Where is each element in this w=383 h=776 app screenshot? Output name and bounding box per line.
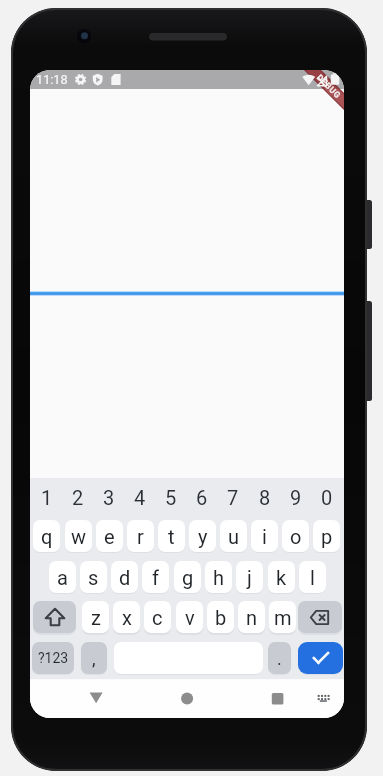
- button[interactable]: ,: [81, 642, 107, 674]
- staticText: 6: [196, 486, 208, 509]
- button[interactable]: 6: [188, 485, 216, 509]
- button[interactable]: [298, 642, 343, 674]
- staticText: 8: [259, 486, 271, 509]
- button[interactable]: z: [82, 601, 109, 633]
- button[interactable]: 9: [282, 485, 310, 509]
- staticText: b: [215, 606, 227, 629]
- button[interactable]: 1: [33, 485, 61, 509]
- staticText: 9: [290, 486, 302, 509]
- button[interactable]: r: [127, 520, 154, 552]
- staticText: 4: [134, 486, 146, 509]
- button[interactable]: u: [220, 520, 247, 552]
- staticText: 7: [227, 486, 239, 509]
- button[interactable]: j: [236, 561, 263, 593]
- staticText: u: [228, 525, 240, 548]
- staticText: h: [213, 566, 225, 589]
- staticText: k: [276, 566, 287, 589]
- staticText: t: [168, 525, 175, 548]
- button[interactable]: 8: [251, 485, 279, 509]
- staticText: d: [119, 566, 131, 589]
- staticText: g: [182, 566, 194, 589]
- button[interactable]: 2: [64, 485, 92, 509]
- staticText: w: [71, 525, 87, 548]
- staticText: i: [262, 525, 267, 548]
- button[interactable]: i: [251, 520, 278, 552]
- staticText: z: [91, 606, 101, 629]
- button[interactable]: 0: [313, 485, 341, 509]
- button[interactable]: .: [268, 642, 291, 674]
- button[interactable]: [173, 684, 201, 712]
- staticText: 0: [321, 486, 333, 509]
- button[interactable]: g: [174, 561, 201, 593]
- button[interactable]: b: [207, 601, 234, 633]
- button[interactable]: f: [142, 561, 169, 593]
- button[interactable]: c: [144, 601, 171, 633]
- staticText: 11:18: [36, 72, 68, 87]
- button[interactable]: y: [189, 520, 216, 552]
- button[interactable]: q: [33, 520, 60, 552]
- button[interactable]: t: [158, 520, 185, 552]
- staticText: 5: [165, 486, 177, 509]
- button[interactable]: d: [111, 561, 138, 593]
- staticText: c: [152, 606, 163, 629]
- staticText: e: [104, 525, 115, 548]
- button[interactable]: 4: [126, 485, 154, 509]
- staticText: s: [88, 566, 99, 589]
- button[interactable]: m: [269, 601, 296, 633]
- button[interactable]: 3: [95, 485, 123, 509]
- button[interactable]: [310, 684, 338, 712]
- button[interactable]: ?123: [32, 642, 74, 674]
- staticText: p: [321, 525, 333, 548]
- staticText: v: [185, 606, 195, 629]
- staticText: o: [290, 525, 302, 548]
- staticText: ?123: [38, 650, 69, 666]
- button[interactable]: s: [80, 561, 107, 593]
- button[interactable]: o: [282, 520, 309, 552]
- button[interactable]: x: [113, 601, 140, 633]
- staticText: l: [310, 566, 315, 589]
- staticText: r: [137, 525, 144, 548]
- button[interactable]: e: [96, 520, 123, 552]
- button[interactable]: 5: [157, 485, 185, 509]
- button[interactable]: l: [299, 561, 326, 593]
- button[interactable]: [263, 684, 291, 712]
- staticText: q: [41, 525, 53, 548]
- button[interactable]: k: [268, 561, 295, 593]
- staticText: m: [274, 606, 292, 629]
- staticText: x: [122, 606, 132, 629]
- button[interactable]: [82, 684, 110, 712]
- staticText: ,: [92, 648, 96, 669]
- button[interactable]: w: [65, 520, 92, 552]
- button[interactable]: h: [205, 561, 232, 593]
- button[interactable]: [298, 601, 342, 633]
- button[interactable]: 7: [219, 485, 247, 509]
- staticText: 2: [72, 486, 84, 509]
- staticText: y: [198, 525, 208, 548]
- staticText: 3: [103, 486, 115, 509]
- button[interactable]: n: [238, 601, 265, 633]
- button[interactable]: v: [176, 601, 203, 633]
- button[interactable]: p: [313, 520, 340, 552]
- staticText: DEBUG: [315, 72, 343, 100]
- staticText: a: [57, 566, 68, 589]
- staticText: .: [277, 648, 282, 669]
- staticText: 1: [41, 486, 53, 509]
- staticText: n: [246, 606, 258, 629]
- staticText: f: [152, 566, 159, 589]
- button[interactable]: [33, 601, 76, 633]
- staticText: j: [247, 566, 252, 589]
- button[interactable]: a: [49, 561, 76, 593]
